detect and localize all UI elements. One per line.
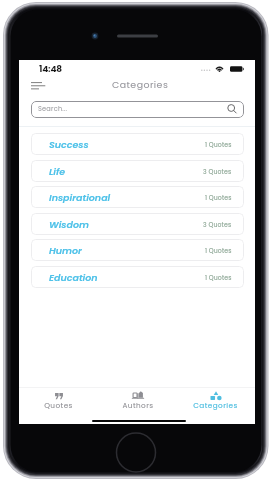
staticText: 14:48 [39, 63, 62, 76]
staticText: Inspirational [49, 191, 111, 204]
staticText: Wisdom [49, 218, 90, 231]
button[interactable]: Search [226, 103, 239, 116]
button[interactable]: Success [31, 133, 244, 155]
button[interactable]: Authors [98, 385, 177, 424]
button[interactable]: Humor [31, 239, 244, 261]
staticText: Search... [38, 104, 68, 113]
staticText: 1 Quotes [205, 273, 232, 282]
button[interactable]: Categories [176, 385, 255, 424]
staticText: Humor [49, 244, 82, 257]
staticText: 1 Quotes [205, 193, 232, 202]
staticText: Authors [122, 400, 154, 410]
staticText: 3 Quotes [203, 220, 232, 229]
button[interactable]: Education [31, 266, 244, 288]
staticText: Life [49, 165, 66, 178]
button[interactable]: Life [31, 160, 244, 182]
button[interactable]: Wisdom [31, 213, 244, 235]
button[interactable]: Menu [25, 75, 51, 95]
staticText: 1 Quotes [205, 140, 232, 149]
button[interactable]: Quotes [19, 385, 98, 424]
staticText: Categories [193, 400, 238, 410]
button[interactable]: Inspirational [31, 186, 244, 208]
button[interactable]: Search... [31, 101, 244, 118]
staticText: 3 Quotes [203, 167, 232, 176]
staticText: Categories [112, 78, 169, 91]
staticText: Success [49, 138, 89, 151]
staticText: Quotes [44, 400, 73, 410]
staticText: Education [49, 271, 98, 284]
staticText: 1 Quotes [205, 246, 232, 255]
